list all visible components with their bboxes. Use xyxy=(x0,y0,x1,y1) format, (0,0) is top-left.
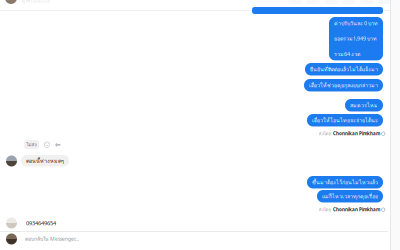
button[interactable]: ขึ้นมาต้องไว้ก่อนไม่ไหวแล้ว xyxy=(307,176,383,188)
button[interactable]: React xyxy=(44,142,50,148)
staticText: ไม่ส่ง xyxy=(26,141,36,148)
staticText: ยืนยันที่ติดต่อแล้วไม่ได้แจ้งมา xyxy=(310,65,378,73)
staticText: รวม64 งวด xyxy=(334,50,360,58)
staticText: Chonnikan Pimkham xyxy=(333,130,380,137)
staticText: ขึ้นมาต้องไว้ก่อนไม่ไหวแล้ว xyxy=(312,178,378,186)
button[interactable]: ตอนนี้ห่างหมดๆ xyxy=(21,155,69,166)
staticText: ค่าปรับวันละ 0 บาท xyxy=(334,19,378,27)
staticText: ตอนนี้ห่างหมดๆ xyxy=(26,156,64,165)
staticText: ตอบกลับใน Messenger… xyxy=(25,235,79,243)
staticText: ยอดรวม1,949 บาท xyxy=(334,34,377,43)
button[interactable]: Reply xyxy=(55,141,61,148)
button[interactable]: ค่าปรับวันละ 0 บาท xyxy=(329,17,383,60)
staticText: แม่ก็ไหวเวลาทุกคุยเรื่อย xyxy=(322,192,378,200)
button[interactable]: ยืนยันที่ติดต่อแล้วไม่ได้แจ้งมา xyxy=(305,63,383,75)
staticText: ส่งโดย xyxy=(319,206,332,213)
staticText: 0934649654 xyxy=(26,219,56,227)
button[interactable]: 0934649654 xyxy=(0,216,400,230)
button[interactable]: เดี๋ยวให้ช่วยคุยกุลแบบกล่าวมา xyxy=(304,79,383,91)
staticText: ผู้ใช้ Facebook xyxy=(22,0,50,4)
staticText: เดี๋ยวให้ช่วยคุยกุลแบบกล่าวมา xyxy=(309,81,378,89)
staticText: สมควรไหม xyxy=(350,101,378,109)
staticText: เดี๋ยวให้โอนไทยจะจ่ายได้นะ xyxy=(312,116,378,124)
staticText: ส่งโดย xyxy=(319,130,332,137)
button[interactable]: สมควรไหม xyxy=(345,99,383,111)
staticText: Chonnikan Pimkham xyxy=(333,206,380,213)
button[interactable]: เดี๋ยวให้โอนไทยจะจ่ายได้นะ xyxy=(307,114,383,126)
button[interactable]: ตอบกลับใน Messenger… xyxy=(0,232,400,246)
button[interactable]: แม่ก็ไหวเวลาทุกคุยเรื่อย xyxy=(317,190,383,202)
